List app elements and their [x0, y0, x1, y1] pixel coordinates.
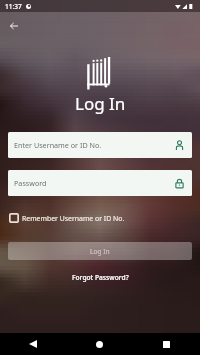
- button[interactable]: Enter Username or ID No.: [8, 132, 192, 158]
- staticText: Log In: [90, 247, 110, 256]
- staticText: Forgot Password?: [72, 273, 129, 282]
- staticText: 11:37: [5, 2, 22, 11]
- button[interactable]: Home: [66, 333, 133, 355]
- button[interactable]: Back: [0, 333, 66, 355]
- button[interactable]: Log In: [8, 242, 192, 260]
- button[interactable]: Forgot Password?: [68, 271, 133, 284]
- button[interactable]: Recent apps: [133, 333, 200, 355]
- button[interactable]: Password: [8, 170, 192, 196]
- staticText: Password: [14, 178, 47, 188]
- staticText: Remember Username or ID No.: [22, 214, 125, 223]
- staticText: Log In: [75, 92, 126, 115]
- staticText: Enter Username or ID No.: [14, 140, 102, 150]
- button[interactable]: Remember Username or ID No.: [9, 211, 200, 225]
- button[interactable]: Navigate up: [3, 15, 25, 37]
